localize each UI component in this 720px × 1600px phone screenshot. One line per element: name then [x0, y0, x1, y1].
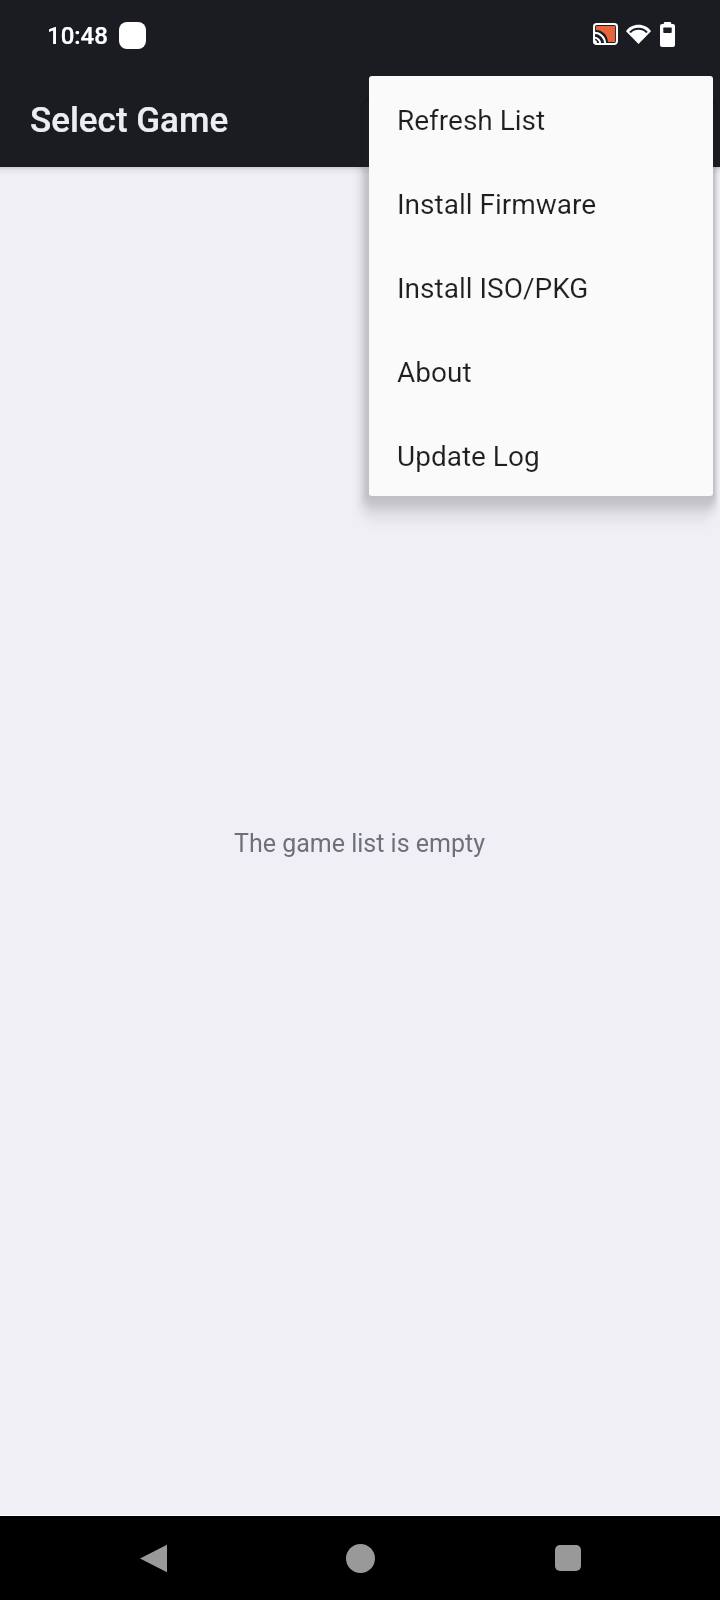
- staticText: Update Log: [397, 440, 540, 473]
- staticText: The game list is empty: [234, 829, 486, 858]
- button[interactable]: About: [369, 328, 713, 412]
- staticText: Install Firmware: [397, 188, 597, 221]
- button[interactable]: Refresh List: [369, 76, 713, 160]
- button[interactable]: Install Firmware: [369, 160, 713, 244]
- staticText: Refresh List: [397, 104, 546, 137]
- button[interactable]: Home: [330, 1528, 390, 1588]
- button[interactable]: Install ISO/PKG: [369, 244, 713, 328]
- button[interactable]: More options: [616, 72, 712, 168]
- staticText: About: [397, 356, 472, 389]
- button[interactable]: Back: [123, 1528, 183, 1588]
- staticText: 10:48: [47, 22, 108, 50]
- staticText: Install ISO/PKG: [397, 272, 589, 305]
- button[interactable]: Update Log: [369, 412, 713, 496]
- staticText: Select Game: [30, 100, 229, 141]
- button[interactable]: Recent apps: [538, 1528, 598, 1588]
